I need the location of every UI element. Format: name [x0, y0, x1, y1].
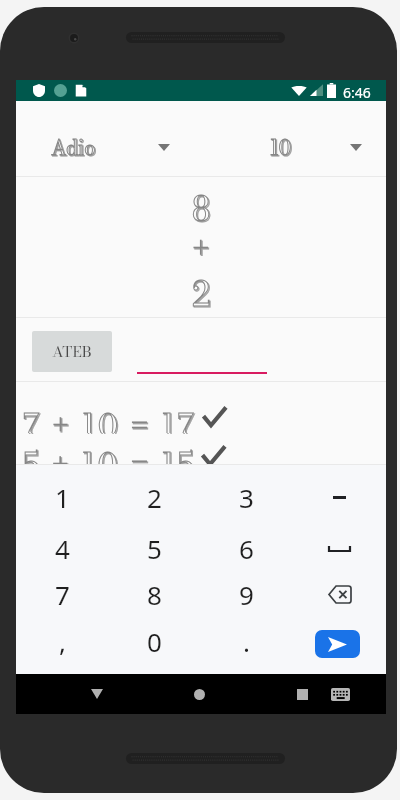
button[interactable]: 1: [16, 473, 108, 521]
staticText: 8: [192, 184, 211, 228]
staticText: 9: [239, 577, 254, 612]
staticText: .: [243, 624, 250, 659]
button[interactable]: Answer input: [137, 337, 267, 375]
button[interactable]: 5: [108, 524, 200, 572]
button[interactable]: 2: [108, 473, 200, 521]
staticText: 5 + 10 = 15: [23, 440, 196, 472]
button[interactable]: 7 + 10 = 17: [23, 401, 393, 433]
button[interactable]: Switch keyboard: [317, 674, 364, 714]
staticText: 5 + 10 = 15: [23, 440, 196, 472]
staticText: 4: [55, 531, 70, 566]
staticText: Adio: [51, 132, 96, 163]
button[interactable]: ,: [16, 617, 108, 665]
staticText: 2: [192, 269, 211, 313]
button[interactable]: 8: [108, 570, 200, 618]
button[interactable]: Backspace: [293, 570, 386, 618]
staticText: 3: [239, 480, 254, 515]
button[interactable]: Space: [293, 524, 386, 572]
staticText: 7: [55, 577, 70, 612]
staticText: 2: [193, 270, 212, 314]
staticText: 8: [193, 185, 212, 229]
staticText: +: [192, 224, 210, 268]
staticText: +: [193, 225, 211, 269]
staticText: 0: [147, 624, 162, 659]
button[interactable]: 10: [256, 125, 372, 169]
button[interactable]: 5 + 10 = 15: [23, 440, 393, 472]
button[interactable]: Send: [315, 630, 360, 658]
button[interactable]: Adio: [46, 125, 182, 169]
staticText: 10: [270, 132, 292, 163]
staticText: +: [192, 224, 210, 268]
staticText: 7 + 10 = 17: [24, 402, 198, 434]
staticText: ATEB: [52, 340, 92, 363]
staticText: 8: [192, 184, 211, 228]
button[interactable]: Home: [168, 674, 231, 714]
staticText: 6: [239, 531, 254, 566]
button[interactable]: 7: [16, 570, 108, 618]
button[interactable]: .: [200, 617, 293, 665]
staticText: ,: [59, 624, 66, 659]
button[interactable]: 3: [200, 473, 293, 521]
staticText: 7 + 10 = 17: [23, 401, 197, 433]
staticText: 2: [192, 269, 211, 313]
staticText: 5 + 10 = 15: [24, 441, 197, 473]
staticText: Adio: [52, 133, 97, 164]
staticText: 10: [270, 132, 292, 163]
button[interactable]: 0: [108, 617, 200, 665]
staticText: 6:46: [343, 83, 371, 102]
button[interactable]: ATEB: [32, 331, 112, 372]
staticText: Adio: [51, 132, 96, 163]
button[interactable]: Back: [65, 674, 129, 714]
staticText: 2: [147, 480, 162, 515]
staticText: 1: [55, 480, 70, 515]
button[interactable]: 9: [200, 570, 293, 618]
button[interactable]: Minus: [293, 473, 386, 521]
button[interactable]: 4: [16, 524, 108, 572]
staticText: 8: [147, 577, 162, 612]
staticText: 10: [271, 133, 293, 164]
button[interactable]: 6: [200, 524, 293, 572]
staticText: 5: [147, 531, 162, 566]
button[interactable]: Recent apps: [270, 674, 334, 714]
staticText: 7 + 10 = 17: [23, 401, 197, 433]
